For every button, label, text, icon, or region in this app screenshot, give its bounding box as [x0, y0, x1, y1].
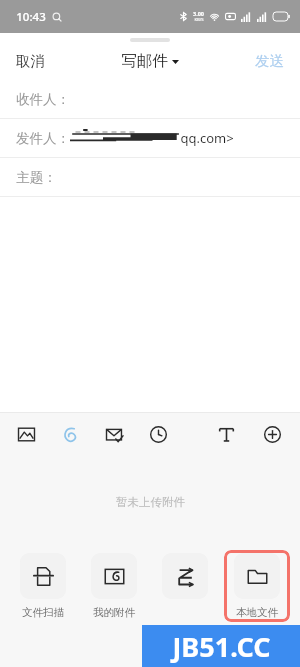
staticText: JB51.CC: [172, 628, 271, 665]
button[interactable]: 写邮件: [117, 47, 183, 75]
button[interactable]: Text format: [212, 420, 240, 448]
button[interactable]: Attachment: [56, 420, 84, 448]
staticText: qq.com>: [180, 129, 234, 147]
staticText: KB/S: [194, 17, 204, 23]
button[interactable]: Mail: [100, 420, 128, 448]
staticText: 10:43: [16, 9, 46, 25]
button[interactable]: Insert image: [12, 420, 40, 448]
staticText: 写邮件: [121, 51, 168, 71]
staticText: 发件人：: [16, 130, 70, 147]
staticText: 收件人：: [16, 91, 70, 108]
button[interactable]: 发件人：: [0, 119, 300, 157]
button[interactable]: More: [258, 420, 286, 448]
button[interactable]: [152, 550, 218, 623]
button[interactable]: 文件扫描: [10, 550, 75, 622]
button[interactable]: 我的附件: [81, 550, 146, 622]
staticText: 主题：: [16, 169, 57, 186]
button[interactable]: 收件人：: [0, 80, 300, 118]
staticText: 文件扫描: [22, 606, 64, 619]
button[interactable]: 主题：: [0, 158, 300, 196]
staticText: 暂未上传附件: [116, 495, 185, 509]
button[interactable]: 本地文件: [224, 550, 290, 622]
staticText: 发送: [255, 52, 284, 70]
staticText: 3.00: [193, 10, 204, 17]
staticText: 我的附件: [93, 606, 135, 619]
staticText: 取消: [16, 52, 45, 70]
staticText: 本地文件: [236, 606, 278, 619]
button[interactable]: 发送: [239, 46, 300, 76]
button[interactable]: Schedule: [144, 420, 172, 448]
button[interactable]: 取消: [0, 46, 61, 76]
